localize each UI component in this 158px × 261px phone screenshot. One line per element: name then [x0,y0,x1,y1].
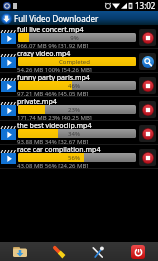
button[interactable]: Downloads [0,242,39,261]
button[interactable]: Stop download [139,125,156,142]
staticText: 23% [68,106,80,114]
staticText: 43.08 MB 56% [24.26 MB] [17,162,89,170]
button[interactable]: race car compilation.mp4 [0,145,158,169]
button[interactable]: crazy video.mp4 [0,49,158,73]
button[interactable]: Stop download [139,149,156,166]
button[interactable]: Stop download [139,77,156,94]
button[interactable]: funny party paris.mp4 [0,73,158,97]
staticText: 56% [68,154,80,162]
button[interactable]: Open file [139,53,156,70]
staticText: 9% [70,34,79,42]
staticText: 97.21 MB 46% [45.05 MB] [17,90,89,98]
staticText: full live concert.mp4 [17,25,84,35]
staticText: 966.07 MB 9% [31.92 MB] [17,42,89,50]
staticText: Completed [59,58,90,66]
button[interactable]: Stop download [139,101,156,118]
button[interactable]: full live concert.mp4 [0,25,158,49]
staticText: 54.26 MB 100% [54.26 MB] [17,66,92,74]
button[interactable]: Stop download [139,29,156,46]
button[interactable]: Clear list [39,242,78,261]
staticText: 13:02 [135,0,156,11]
staticText: 171.74 MB 23% [40.25 MB] [17,114,92,122]
staticText: 93.88 MB 34% [32.67 MB] [17,138,89,146]
button[interactable]: the best videoclip.mp4 [0,121,158,145]
staticText: 46% [68,82,80,90]
staticText: race car compilation.mp4 [17,145,101,155]
staticText: 34% [68,130,80,138]
staticText: private.mp4 [17,97,57,107]
button[interactable]: private.mp4 [0,97,158,121]
staticText: crazy video.mp4 [17,49,71,59]
button[interactable]: Exit [118,242,158,261]
staticText: funny party paris.mp4 [17,73,90,83]
staticText: Full Video Downloader [14,13,99,24]
button[interactable]: Settings [78,242,118,261]
staticText: the best videoclip.mp4 [17,121,92,131]
